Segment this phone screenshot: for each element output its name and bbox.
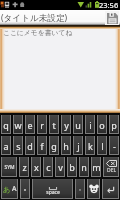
staticText: 23:56: [99, 0, 119, 10]
button[interactable]: Save: [105, 11, 119, 25]
button[interactable]: j: [72, 135, 84, 156]
button[interactable]: Emoji: [86, 178, 101, 200]
button[interactable]: p: [108, 114, 120, 135]
button[interactable]: t: [48, 114, 60, 135]
staticText: DEL: [107, 167, 117, 174]
button[interactable]: z: [18, 156, 30, 178]
button[interactable]: Period: [74, 178, 86, 200]
button[interactable]: c: [42, 156, 54, 178]
button[interactable]: d: [24, 135, 36, 156]
button[interactable]: m: [90, 156, 102, 178]
staticText: l: [101, 140, 104, 152]
button[interactable]: q: [0, 114, 12, 135]
staticText: j: [77, 140, 80, 152]
staticText: g: [51, 140, 57, 152]
staticText: a: [3, 140, 9, 152]
button[interactable]: x: [30, 156, 42, 178]
button[interactable]: k: [84, 135, 96, 156]
staticText: y: [64, 119, 69, 131]
staticText: m: [92, 161, 101, 173]
staticText: -: [113, 140, 116, 152]
button[interactable]: Switch language: [0, 178, 19, 200]
staticText: v: [58, 161, 63, 173]
staticText: h: [63, 140, 69, 152]
button[interactable]: v: [54, 156, 66, 178]
staticText: t: [52, 119, 56, 131]
staticText: c: [46, 161, 51, 173]
button[interactable]: Delete: [102, 156, 120, 178]
staticText: space: [46, 189, 60, 196]
staticText: u: [75, 119, 81, 131]
staticText: b: [69, 161, 75, 173]
staticText: i: [89, 119, 92, 131]
button[interactable]: i: [84, 114, 96, 135]
button[interactable]: s: [12, 135, 24, 156]
staticText: o: [99, 119, 105, 131]
staticText: SYM: [4, 164, 15, 171]
staticText: (タイトル未設定): [1, 12, 68, 24]
button[interactable]: g: [48, 135, 60, 156]
staticText: ここにメモを書いてね: [3, 28, 73, 37]
staticText: n: [81, 161, 87, 173]
button[interactable]: n: [78, 156, 90, 178]
button[interactable]: SYM: [0, 156, 18, 178]
button[interactable]: r: [36, 114, 48, 135]
staticText: f: [40, 140, 44, 152]
staticText: A: [12, 184, 17, 194]
button[interactable]: h: [60, 135, 72, 156]
button[interactable]: a: [0, 135, 12, 156]
staticText: r: [40, 119, 44, 131]
staticText: x: [34, 161, 39, 173]
button[interactable]: Comma: [19, 178, 31, 200]
staticText: d: [27, 140, 33, 152]
staticText: s: [16, 140, 21, 152]
staticText: p: [111, 119, 117, 131]
staticText: w: [14, 119, 22, 131]
staticText: あ: [3, 185, 11, 194]
button[interactable]: Enter: [101, 178, 120, 200]
button[interactable]: f: [36, 135, 48, 156]
button[interactable]: y: [60, 114, 72, 135]
staticText: k: [88, 140, 93, 152]
button[interactable]: -: [108, 135, 120, 156]
staticText: z: [22, 161, 27, 173]
staticText: q: [3, 119, 9, 131]
button[interactable]: e: [24, 114, 36, 135]
staticText: e: [27, 119, 33, 131]
button[interactable]: l: [96, 135, 108, 156]
button[interactable]: o: [96, 114, 108, 135]
button[interactable]: b: [66, 156, 78, 178]
button[interactable]: u: [72, 114, 84, 135]
button[interactable]: space: [31, 178, 74, 200]
button[interactable]: w: [12, 114, 24, 135]
